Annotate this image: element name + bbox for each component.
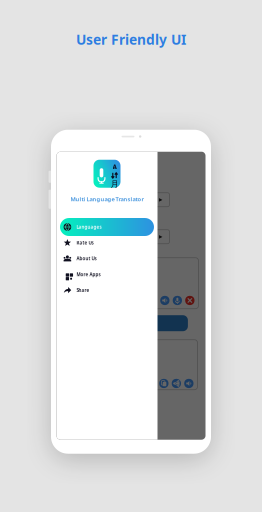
button[interactable]: Languages: [60, 218, 154, 236]
staticText: Share: [76, 287, 89, 293]
staticText: Languages: [76, 224, 101, 230]
button[interactable]: Rate Us: [60, 234, 154, 252]
staticText: User Friendly UI: [76, 30, 186, 49]
button[interactable]: Share: [60, 281, 154, 299]
button[interactable]: About Us: [60, 250, 154, 268]
staticText: More Apps: [76, 271, 100, 277]
staticText: Multi Language Translator: [70, 195, 143, 203]
staticText: 月: [110, 179, 118, 189]
staticText: Rate Us: [76, 240, 93, 246]
staticText: A: [112, 163, 116, 171]
staticText: About Us: [76, 256, 96, 262]
button[interactable]: More Apps: [60, 265, 154, 283]
